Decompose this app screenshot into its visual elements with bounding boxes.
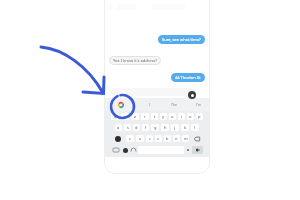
staticText: I (149, 102, 151, 107)
button[interactable]: e (131, 113, 139, 120)
staticText: h (164, 125, 167, 130)
staticText: r (144, 114, 146, 119)
button[interactable]: i (178, 113, 185, 120)
staticText: q (114, 114, 117, 119)
staticText: Yea I know it's address? (113, 58, 157, 63)
staticText: t (154, 114, 156, 119)
button[interactable]: o (187, 113, 194, 120)
button[interactable]: y (160, 113, 167, 120)
staticText: a (117, 125, 120, 130)
staticText: m (184, 136, 188, 141)
staticText: w (123, 114, 127, 119)
staticText: x (139, 136, 142, 141)
staticText: f (145, 125, 147, 130)
button[interactable]: Shift (110, 133, 125, 144)
button[interactable]: z (126, 135, 134, 142)
button[interactable]: w (121, 113, 129, 120)
button[interactable]: x (136, 135, 144, 142)
staticText: I'm (196, 102, 201, 107)
button[interactable]: l (191, 124, 199, 131)
button[interactable]: The (162, 98, 186, 111)
button[interactable]: Send (188, 91, 196, 99)
staticText: The (171, 102, 177, 107)
button[interactable]: j (171, 124, 179, 131)
staticText: v (157, 136, 160, 141)
staticText: p (198, 114, 201, 119)
button[interactable]: v (155, 135, 162, 142)
button[interactable]: I'm (186, 98, 210, 111)
button[interactable]: f (142, 124, 149, 131)
button[interactable]: c (146, 135, 153, 142)
staticText: i (181, 114, 183, 119)
button[interactable]: t (151, 113, 158, 120)
staticText: d (135, 125, 138, 130)
button[interactable]: u (169, 113, 176, 120)
button[interactable] (111, 88, 195, 96)
button[interactable]: I (138, 98, 162, 111)
staticText: s (127, 125, 129, 130)
staticText: j (174, 125, 176, 130)
button[interactable]: m (182, 135, 189, 142)
button[interactable]: Sure, see what time? (158, 35, 205, 44)
button[interactable]: Emoji (121, 146, 129, 154)
staticText: Sure, see what time? (162, 37, 201, 42)
staticText: y (162, 114, 165, 119)
staticText: b (166, 136, 169, 141)
button[interactable]: Symbols (110, 146, 121, 154)
button[interactable]: Period (185, 146, 191, 154)
button[interactable]: s (124, 124, 131, 131)
button[interactable]: g (151, 124, 159, 131)
button[interactable]: Backspace (190, 133, 204, 144)
button[interactable]: h (161, 124, 169, 131)
button[interactable]: Enter (192, 146, 203, 154)
staticText: g (154, 125, 157, 130)
staticText: c (149, 136, 151, 141)
staticText: z (129, 136, 131, 141)
button[interactable]: Settings (129, 146, 137, 154)
staticText: o (189, 114, 192, 119)
staticText: l (194, 125, 196, 130)
button[interactable]: b (164, 135, 171, 142)
button[interactable]: r (141, 113, 149, 120)
staticText: n (175, 136, 178, 141)
button[interactable]: d (133, 124, 140, 131)
button[interactable]: k (181, 124, 189, 131)
button[interactable]: 44 Thorton St (171, 73, 205, 82)
button[interactable]: q (111, 113, 119, 120)
button[interactable]: n (173, 135, 180, 142)
button[interactable]: Yea I know it's address? (109, 56, 161, 65)
button[interactable]: a (115, 124, 122, 131)
staticText: u (171, 114, 174, 119)
staticText: 44 Thorton St (175, 75, 201, 80)
button[interactable]: p (196, 113, 203, 120)
button[interactable]: Google (104, 98, 138, 111)
staticText: k (184, 125, 187, 130)
staticText: e (134, 114, 137, 119)
